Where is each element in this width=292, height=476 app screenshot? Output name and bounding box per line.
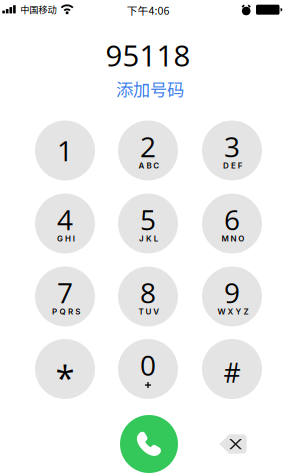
- staticText: 下午4:06: [126, 2, 169, 18]
- staticText: A: [138, 161, 144, 170]
- button[interactable]: 0: [118, 339, 178, 399]
- staticText: F: [238, 161, 243, 170]
- staticText: L: [154, 234, 159, 243]
- button[interactable]: *: [35, 339, 95, 399]
- button[interactable]: 添加号码: [108, 73, 192, 105]
- button[interactable]: #: [202, 339, 262, 399]
- staticText: C: [153, 161, 159, 170]
- staticText: V: [153, 307, 159, 316]
- button[interactable]: 8: [118, 266, 178, 326]
- button[interactable]: 7: [35, 266, 95, 326]
- staticText: #: [223, 354, 240, 391]
- staticText: H: [65, 234, 71, 243]
- staticText: U: [145, 307, 151, 316]
- staticText: 中国移动: [20, 2, 56, 16]
- staticText: R: [68, 307, 73, 316]
- staticText: Y: [235, 307, 241, 316]
- staticText: W: [217, 307, 225, 316]
- button[interactable]: 9: [202, 266, 262, 326]
- staticText: B: [146, 161, 151, 170]
- staticText: N: [230, 234, 236, 243]
- staticText: X: [227, 307, 233, 316]
- staticText: D: [223, 161, 229, 170]
- staticText: Z: [243, 307, 248, 316]
- staticText: 4: [57, 200, 73, 238]
- staticText: Q: [59, 307, 65, 316]
- button[interactable]: Delete: [209, 422, 257, 466]
- staticText: 7: [57, 273, 73, 311]
- staticText: J: [139, 234, 144, 243]
- staticText: 添加号码: [116, 76, 184, 102]
- staticText: E: [231, 161, 236, 170]
- staticText: O: [238, 234, 244, 243]
- staticText: I: [73, 234, 75, 243]
- staticText: 5: [140, 200, 156, 238]
- button[interactable]: Call: [120, 415, 178, 473]
- button[interactable]: 5: [118, 193, 178, 253]
- staticText: P: [52, 307, 57, 316]
- staticText: 2: [140, 127, 156, 165]
- button[interactable]: 2: [118, 120, 178, 180]
- staticText: G: [57, 234, 63, 243]
- staticText: 95118: [105, 35, 190, 75]
- staticText: 3: [224, 127, 240, 165]
- button[interactable]: 3: [202, 120, 262, 180]
- staticText: 0: [140, 346, 156, 384]
- staticText: S: [75, 307, 80, 316]
- staticText: K: [146, 234, 152, 243]
- staticText: M: [221, 234, 228, 243]
- staticText: 1: [57, 131, 73, 169]
- staticText: 8: [140, 273, 156, 311]
- button[interactable]: 6: [202, 193, 262, 253]
- staticText: 6: [224, 200, 240, 238]
- staticText: 9: [224, 273, 240, 311]
- staticText: *: [55, 353, 74, 401]
- button[interactable]: 1: [35, 120, 95, 180]
- button[interactable]: 4: [35, 193, 95, 253]
- staticText: T: [138, 307, 143, 316]
